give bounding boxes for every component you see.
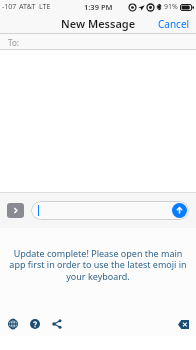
staticText: To: xyxy=(8,37,19,48)
button[interactable]: Cancel xyxy=(152,14,196,34)
staticText: -107 xyxy=(2,2,17,12)
staticText: 1:39 PM xyxy=(84,2,113,12)
button[interactable]: Send xyxy=(31,201,189,220)
staticText: 91% xyxy=(164,2,178,12)
button[interactable]: Share xyxy=(48,315,66,333)
staticText: Update complete! Please open the main ap… xyxy=(9,247,187,283)
button[interactable]: Delete xyxy=(175,316,191,332)
button[interactable]: Show apps xyxy=(7,203,24,218)
button[interactable]: Help xyxy=(26,315,44,333)
staticText: LTE xyxy=(39,2,51,12)
button[interactable]: Switch keyboard xyxy=(4,315,22,333)
staticText: Cancel xyxy=(158,17,190,31)
staticText: AT&T xyxy=(19,2,36,12)
button[interactable]: To: xyxy=(0,34,196,50)
button[interactable]: Send xyxy=(172,203,187,218)
staticText: New Message xyxy=(61,16,136,31)
